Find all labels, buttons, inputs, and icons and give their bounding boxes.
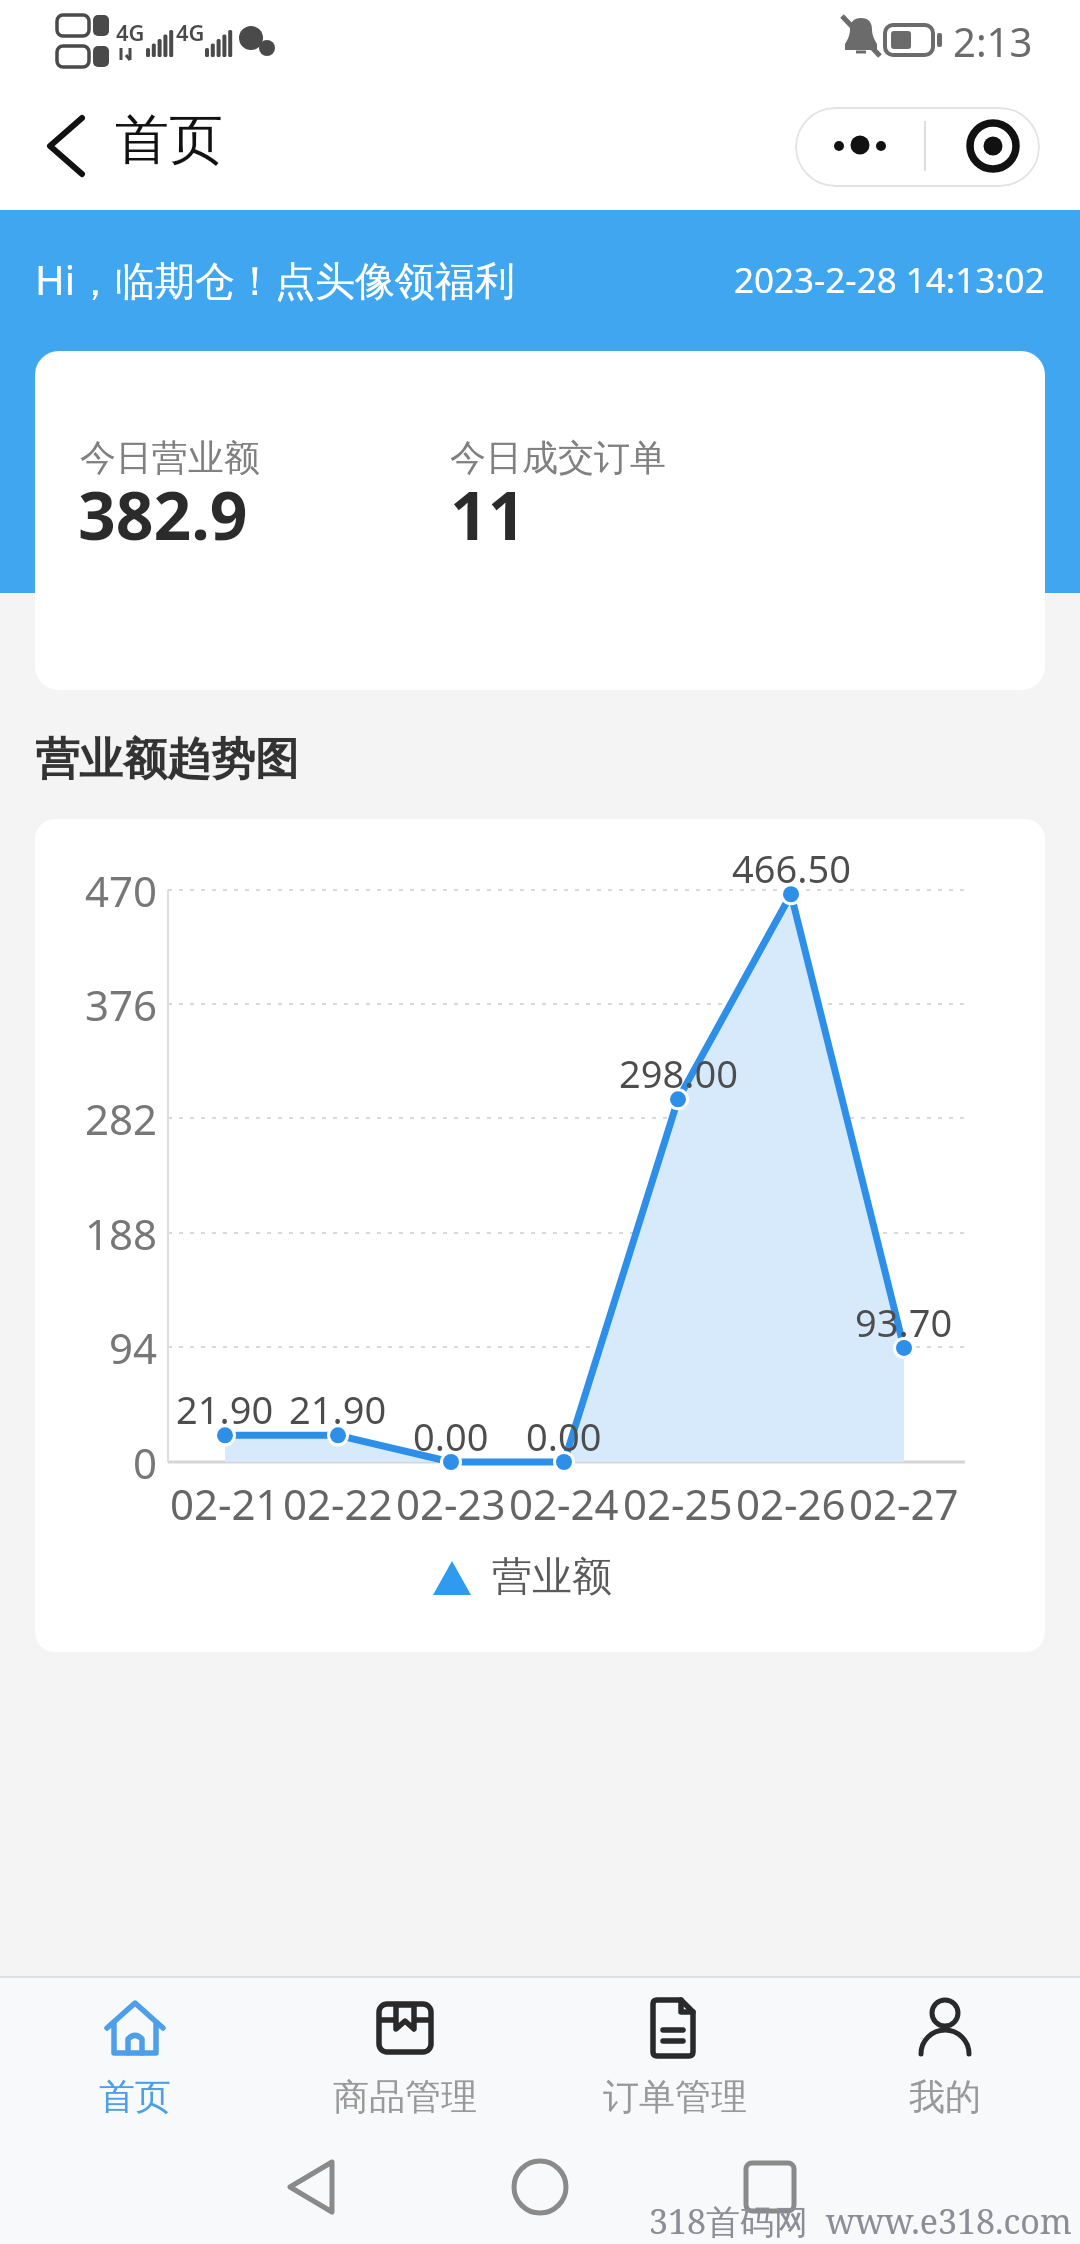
staticText: 02-25 bbox=[623, 1475, 733, 1531]
staticText: 今日成交订单 bbox=[450, 435, 666, 480]
staticText: 470 bbox=[85, 862, 158, 919]
staticText: 11 bbox=[450, 469, 526, 559]
staticText: 营业额趋势图 bbox=[35, 732, 299, 787]
staticText: 02-22 bbox=[283, 1475, 393, 1531]
staticText: Hi，临期仓！点头像领福利 bbox=[35, 252, 515, 307]
staticText: 298.00 bbox=[619, 1047, 738, 1093]
staticText: 318首码网 www.e318.com bbox=[649, 2198, 1072, 2244]
staticText: 4G bbox=[176, 17, 205, 47]
staticText: 0.00 bbox=[526, 1410, 602, 1456]
staticText: 466.50 bbox=[732, 842, 851, 888]
staticText: 376 bbox=[85, 976, 158, 1033]
staticText: 我的 bbox=[909, 2074, 981, 2119]
staticText: 21.90 bbox=[289, 1383, 387, 1429]
staticText: 首页 bbox=[115, 106, 223, 174]
button[interactable]: 商品管理 bbox=[270, 1978, 540, 2130]
staticText: 0.00 bbox=[413, 1410, 489, 1456]
button[interactable]: 订单管理 bbox=[540, 1978, 810, 2130]
staticText: 21.90 bbox=[176, 1383, 274, 1429]
staticText: 02-23 bbox=[396, 1475, 506, 1531]
staticText: 0 bbox=[133, 1434, 158, 1491]
staticText: 282 bbox=[85, 1090, 158, 1147]
button[interactable] bbox=[30, 110, 110, 190]
staticText: 营业额 bbox=[492, 1551, 612, 1601]
staticText: 订单管理 bbox=[603, 2074, 747, 2119]
staticText: 02-26 bbox=[736, 1475, 846, 1531]
button[interactable]: 今日营业额 bbox=[35, 351, 1045, 690]
staticText: 02-21 bbox=[170, 1475, 280, 1531]
staticText: 4G bbox=[116, 17, 145, 47]
staticText: 商品管理 bbox=[333, 2074, 477, 2119]
staticText: 首页 bbox=[99, 2074, 171, 2119]
staticText: 02-24 bbox=[509, 1475, 619, 1531]
staticText: 今日营业额 bbox=[80, 435, 260, 480]
staticText: 93.70 bbox=[855, 1296, 953, 1342]
staticText: 2023-2-28 14:13:02 bbox=[734, 256, 1045, 304]
staticText: 382.9 bbox=[78, 469, 248, 559]
staticText: 94 bbox=[109, 1319, 158, 1376]
staticText: 02-27 bbox=[849, 1475, 959, 1531]
staticText: 188 bbox=[85, 1205, 158, 1262]
staticText: 2:13 bbox=[953, 14, 1033, 68]
button[interactable] bbox=[795, 107, 1040, 187]
button[interactable]: 我的 bbox=[810, 1978, 1080, 2130]
button[interactable]: 首页 bbox=[0, 1978, 270, 2130]
